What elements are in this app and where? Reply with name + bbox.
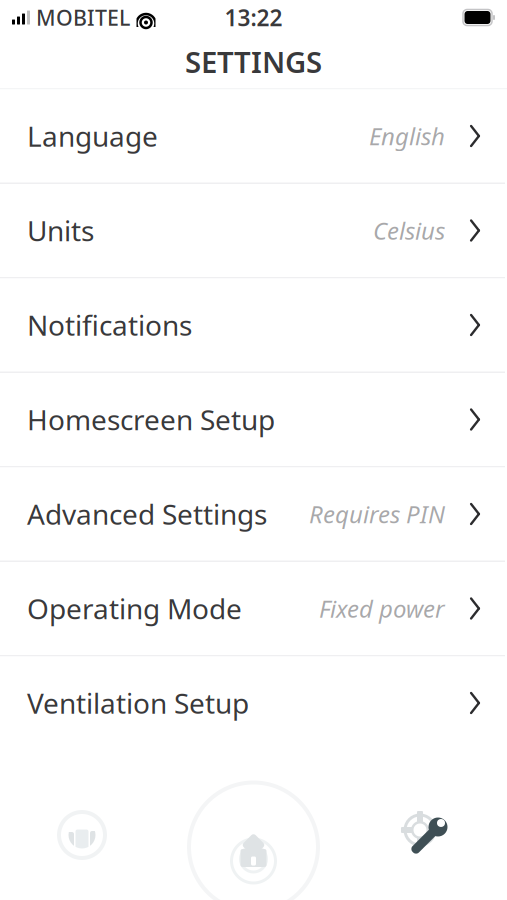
staticText: Units [27, 212, 94, 249]
button[interactable]: Notifications [0, 278, 507, 371]
staticText: SETTINGS [185, 42, 322, 81]
button[interactable]: Settings [365, 780, 485, 890]
button[interactable]: Language [0, 89, 507, 182]
button[interactable]: Home [183, 777, 323, 900]
staticText: Celsius [373, 215, 445, 246]
staticText: Language [27, 117, 158, 155]
staticText: Homescreen Setup [27, 401, 275, 438]
staticText: Advanced Settings [27, 495, 267, 533]
button[interactable]: Ventilation Setup [0, 656, 507, 749]
staticText: Operating Mode [27, 590, 242, 627]
button[interactable]: Ventilation [22, 780, 142, 890]
button[interactable]: Operating Mode [0, 562, 507, 655]
staticText: Notifications [27, 306, 192, 344]
staticText: Requires PIN [309, 498, 445, 530]
staticText: Ventilation Setup [27, 684, 249, 722]
button[interactable]: Homescreen Setup [0, 373, 507, 466]
staticText: English [369, 120, 445, 152]
button[interactable]: Advanced Settings [0, 467, 507, 560]
button[interactable]: Units [0, 184, 507, 277]
staticText: MOBITEL [36, 3, 130, 32]
staticText: Fixed power [319, 593, 445, 624]
staticText: 13:22 [224, 2, 282, 32]
